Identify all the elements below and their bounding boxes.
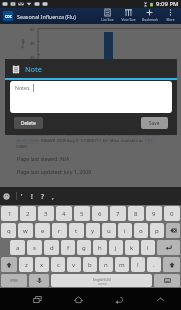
staticText: 9:09 PM <box>156 0 179 8</box>
button[interactable]: mic <box>29 274 49 287</box>
staticText: 6 <box>98 210 102 218</box>
button[interactable]: 5 <box>74 206 90 221</box>
button[interactable]: ! <box>131 257 145 272</box>
button[interactable]: d <box>44 240 59 255</box>
staticText: g <box>82 244 86 252</box>
button[interactable]: Hide keyboard <box>152 291 168 307</box>
staticText: h <box>98 244 102 252</box>
button[interactable]: j <box>109 240 123 255</box>
staticText: d <box>50 244 54 252</box>
staticText: (ACIP) 2008 <box>16 138 39 144</box>
staticText: CDC <box>5 14 12 19</box>
button[interactable]: g <box>77 240 91 255</box>
button[interactable]: More <box>160 8 181 24</box>
button[interactable]: c <box>51 257 65 272</box>
button[interactable]: Save <box>141 117 168 129</box>
staticText: PDF <box>145 138 153 144</box>
button[interactable]: h <box>93 240 107 255</box>
staticText: View Size <box>121 17 136 21</box>
staticText: Recommendations of the Advisory Committe… <box>16 132 160 138</box>
staticText: English(US) <box>93 277 111 282</box>
staticText: 1 <box>142 257 144 261</box>
staticText: q <box>7 227 11 235</box>
staticText: v <box>72 261 76 269</box>
staticText: 5 <box>80 210 84 218</box>
button[interactable]: . <box>147 257 161 272</box>
button[interactable]: Back <box>111 291 127 307</box>
staticText: r <box>58 227 61 235</box>
staticText: w <box>23 227 28 235</box>
button[interactable]: r <box>52 223 67 238</box>
button[interactable]: View Size <box>118 8 139 24</box>
staticText: t <box>75 227 78 235</box>
button[interactable]: Notes. <box>10 81 172 113</box>
button[interactable]: q <box>1 223 16 238</box>
staticText: 3 <box>44 210 48 218</box>
staticText: i <box>124 227 126 235</box>
button[interactable]: a <box>10 240 25 255</box>
staticText: . MMWR 2008 Aug 8; 57(RR07):1-60. (Also … <box>39 138 145 144</box>
button[interactable]: shift <box>163 257 180 272</box>
staticText: , <box>52 192 54 201</box>
button[interactable]: y <box>86 223 100 238</box>
staticText: 1 <box>8 210 12 218</box>
button[interactable]: Home <box>70 291 86 307</box>
button[interactable]: 8 <box>128 206 144 221</box>
button[interactable]: 1 <box>1 206 18 221</box>
button[interactable]: del <box>166 223 180 238</box>
staticText: Seasonal Influenza (Flu) <box>17 13 76 20</box>
button[interactable]: kb <box>154 274 180 287</box>
button[interactable]: Recent apps <box>29 291 45 307</box>
button[interactable]: 6 <box>92 206 108 221</box>
button[interactable]: 4 <box>56 206 72 221</box>
button[interactable]: Emoji <box>3 193 10 200</box>
button[interactable]: shift <box>1 257 17 272</box>
button[interactable]: m <box>115 257 129 272</box>
button[interactable]: v <box>67 257 81 272</box>
button[interactable]: l <box>141 240 155 255</box>
staticText: f <box>67 244 70 252</box>
button[interactable]: 0 <box>164 206 180 221</box>
button[interactable]: i <box>118 223 132 238</box>
button[interactable]: List Size <box>97 8 118 24</box>
staticText: 9 <box>152 210 156 218</box>
staticText: Save <box>149 120 160 127</box>
staticText: Page last viewed: N/A <box>17 155 70 162</box>
staticText: ? <box>41 192 44 201</box>
staticText: e <box>41 227 45 235</box>
staticText: Note <box>25 64 42 74</box>
button[interactable]: 9 <box>146 206 162 221</box>
button[interactable]: 7 <box>110 206 126 221</box>
staticText: 0 <box>170 210 174 218</box>
button[interactable]: enter <box>157 240 180 255</box>
button[interactable]: w <box>18 223 33 238</box>
staticText: % age <box>19 38 24 48</box>
staticText: k <box>130 244 134 252</box>
button[interactable]: b <box>83 257 97 272</box>
staticText: Page last updated: July 1, 2009 <box>17 168 92 175</box>
button[interactable]: u <box>102 223 116 238</box>
button[interactable]: o <box>134 223 148 238</box>
staticText: ? <box>158 257 160 261</box>
button[interactable]: k <box>125 240 139 255</box>
staticText: l <box>147 244 149 252</box>
staticText: Delete <box>21 120 36 127</box>
button[interactable]: Delete <box>14 117 43 129</box>
button[interactable]: s <box>27 240 42 255</box>
staticText: SYM <box>10 278 18 283</box>
button[interactable]: t <box>69 223 84 238</box>
button[interactable]: p <box>150 223 164 238</box>
button[interactable]: Bookmark <box>139 8 160 24</box>
button[interactable]: z <box>19 257 33 272</box>
button[interactable]: x <box>35 257 49 272</box>
staticText: x <box>40 261 44 269</box>
button[interactable]: 3 <box>38 206 54 221</box>
button[interactable]: e <box>35 223 50 238</box>
button[interactable]: English(US) <box>51 274 152 287</box>
staticText: m <box>119 261 125 269</box>
button[interactable]: SYM <box>1 274 27 287</box>
staticText: ! <box>31 192 33 201</box>
button[interactable]: 2 <box>20 206 36 221</box>
button[interactable]: n <box>99 257 113 272</box>
button[interactable]: f <box>61 240 75 255</box>
